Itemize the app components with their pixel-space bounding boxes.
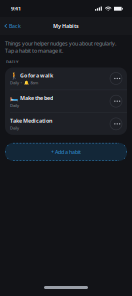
button[interactable]: 🛏️ bbox=[5, 90, 127, 112]
staticText: Daily bbox=[10, 80, 19, 85]
staticText: 9:41 bbox=[11, 5, 21, 12]
staticText: Take Medication bbox=[10, 117, 52, 124]
staticText: 🛏️ bbox=[10, 94, 18, 102]
staticText: Things your helper nudges you about regu… bbox=[5, 40, 116, 54]
staticText: Go for a walk bbox=[20, 72, 53, 79]
button[interactable]: Back bbox=[0, 18, 27, 34]
staticText: + Add a habit bbox=[51, 148, 81, 155]
staticText: 8am bbox=[30, 80, 38, 85]
staticText: Daily bbox=[10, 125, 19, 131]
staticText: Daily bbox=[10, 103, 19, 108]
button[interactable]: + Add a habit bbox=[5, 143, 127, 161]
staticText: 🚶 bbox=[10, 71, 18, 79]
button[interactable]: More options bbox=[110, 95, 122, 107]
button[interactable]: More options bbox=[110, 118, 122, 130]
staticText: DAILY bbox=[6, 59, 19, 64]
staticText: 🔔 bbox=[24, 80, 29, 85]
staticText: Back bbox=[9, 22, 21, 30]
button[interactable]: More options bbox=[110, 72, 122, 84]
staticText: • bbox=[20, 80, 22, 85]
staticText: My Habits bbox=[53, 22, 79, 30]
staticText: Make the bed bbox=[20, 94, 53, 102]
button[interactable]: Take Medication bbox=[5, 113, 127, 135]
button[interactable]: 🚶 bbox=[5, 67, 127, 89]
